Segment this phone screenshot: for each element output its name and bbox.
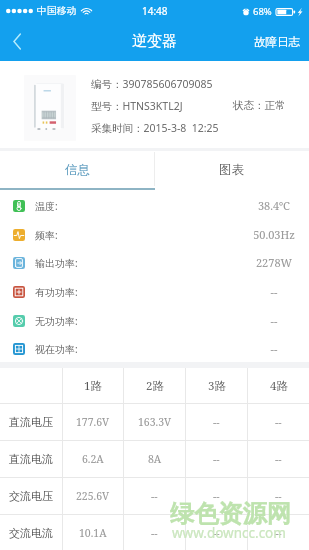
staticText: -- <box>238 313 309 328</box>
staticText: 交流电流 <box>9 526 53 540</box>
staticText: 采集时间：2015-3-8 12:25 <box>91 121 219 135</box>
staticText: 温度: <box>35 199 58 213</box>
staticText: 2278W <box>238 255 309 270</box>
staticText: 163.3V <box>138 415 172 429</box>
staticText: 68% <box>253 5 272 18</box>
staticText: -- <box>275 452 282 466</box>
staticText: 故障日志 <box>254 35 300 49</box>
button[interactable]: 频率: <box>0 219 309 248</box>
staticText: 图表 <box>219 162 244 178</box>
button[interactable]: 输出功率: <box>0 247 309 276</box>
staticText: 状态：正常 <box>233 99 286 112</box>
staticText: 视在功率: <box>35 342 78 356</box>
staticText: 频率: <box>35 228 58 242</box>
button[interactable]: 图表 <box>154 151 309 190</box>
staticText: -- <box>238 341 309 356</box>
staticText: -- <box>213 526 220 540</box>
staticText: -- <box>151 526 158 540</box>
staticText: 型号：HTNS3KTL2J <box>91 99 183 113</box>
staticText: -- <box>213 452 220 466</box>
staticText: 38.4℃ <box>238 198 309 213</box>
staticText: 50.03Hz <box>238 227 309 242</box>
staticText: 无功功率: <box>35 314 78 328</box>
staticText: 10.1A <box>79 526 107 540</box>
staticText: 绿色资源网 <box>170 499 291 529</box>
staticText: www.downcc.com <box>172 524 286 542</box>
button[interactable]: 有功功率: <box>0 276 309 305</box>
button[interactable]: 无功功率: <box>0 305 309 334</box>
button[interactable]: 视在功率: <box>0 333 309 362</box>
staticText: 8A <box>148 452 162 466</box>
staticText: -- <box>275 489 282 503</box>
button[interactable]: 温度: <box>0 190 309 219</box>
staticText: 编号：390785606709085 <box>91 77 213 91</box>
staticText: 14:48 <box>142 4 168 18</box>
button[interactable]: 故障日志 <box>0 22 309 61</box>
staticText: 输出功率: <box>35 256 78 270</box>
staticText: 1路 <box>84 378 102 394</box>
staticText: 2路 <box>146 378 164 394</box>
staticText: 177.6V <box>76 415 110 429</box>
staticText: -- <box>213 489 220 503</box>
staticText: 逆变器 <box>132 32 177 51</box>
staticText: -- <box>275 415 282 429</box>
staticText: -- <box>275 526 282 540</box>
staticText: -- <box>213 415 220 429</box>
staticText: 3路 <box>208 378 226 394</box>
staticText: 直流电压 <box>9 415 53 429</box>
staticText: 交流电压 <box>9 489 53 503</box>
staticText: 4路 <box>270 378 288 394</box>
button[interactable]: 信息 <box>0 151 154 190</box>
staticText: -- <box>151 489 158 503</box>
button[interactable]: Back <box>0 22 34 61</box>
staticText: 信息 <box>65 162 90 178</box>
staticText: -- <box>238 284 309 299</box>
staticText: 6.2A <box>82 452 104 466</box>
staticText: 225.6V <box>76 489 110 503</box>
staticText: 直流电流 <box>9 452 53 466</box>
staticText: 有功功率: <box>35 285 78 299</box>
staticText: 中国移动 <box>37 5 77 17</box>
